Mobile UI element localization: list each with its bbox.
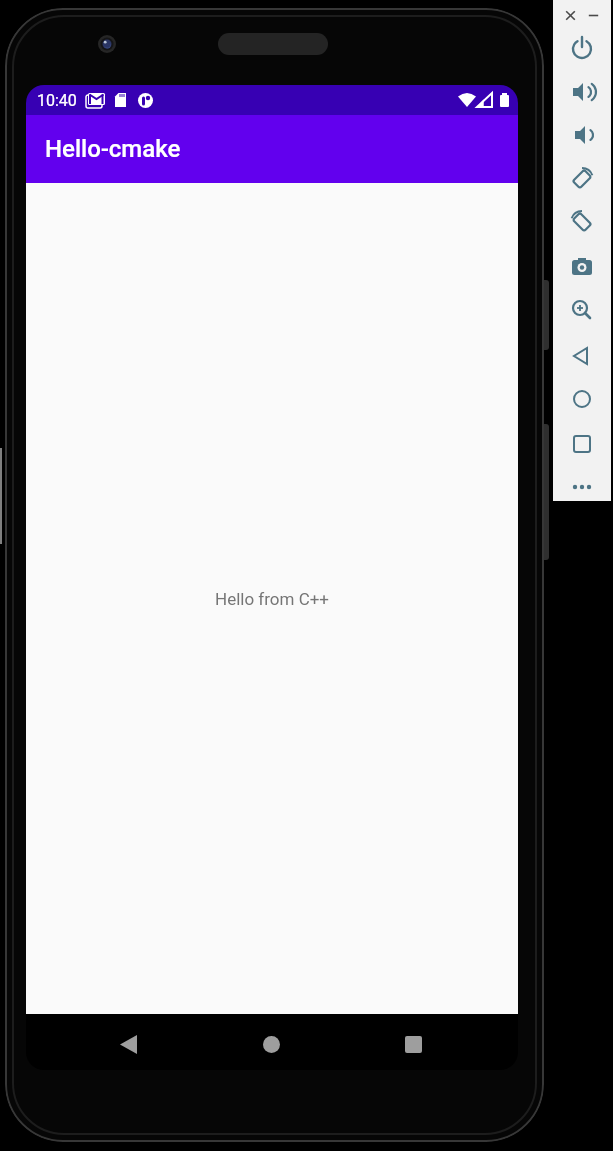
button[interactable] xyxy=(569,79,595,105)
staticText: 10:40 xyxy=(37,91,77,110)
button[interactable] xyxy=(120,1035,137,1054)
button[interactable] xyxy=(569,254,595,280)
button[interactable] xyxy=(569,36,595,62)
button[interactable] xyxy=(569,166,595,192)
button[interactable] xyxy=(405,1036,422,1053)
staticText: Hello-cmake xyxy=(45,135,181,163)
button[interactable] xyxy=(588,10,599,21)
staticText: Hello from C++ xyxy=(215,589,330,609)
button[interactable] xyxy=(569,297,595,323)
button[interactable] xyxy=(569,474,595,500)
button[interactable] xyxy=(263,1036,280,1053)
button[interactable]: Hello-cmake xyxy=(26,115,518,183)
button[interactable] xyxy=(569,209,595,235)
button[interactable] xyxy=(569,386,595,412)
button[interactable] xyxy=(569,431,595,457)
button[interactable] xyxy=(569,343,595,369)
button[interactable] xyxy=(565,10,576,21)
button[interactable] xyxy=(569,122,595,148)
